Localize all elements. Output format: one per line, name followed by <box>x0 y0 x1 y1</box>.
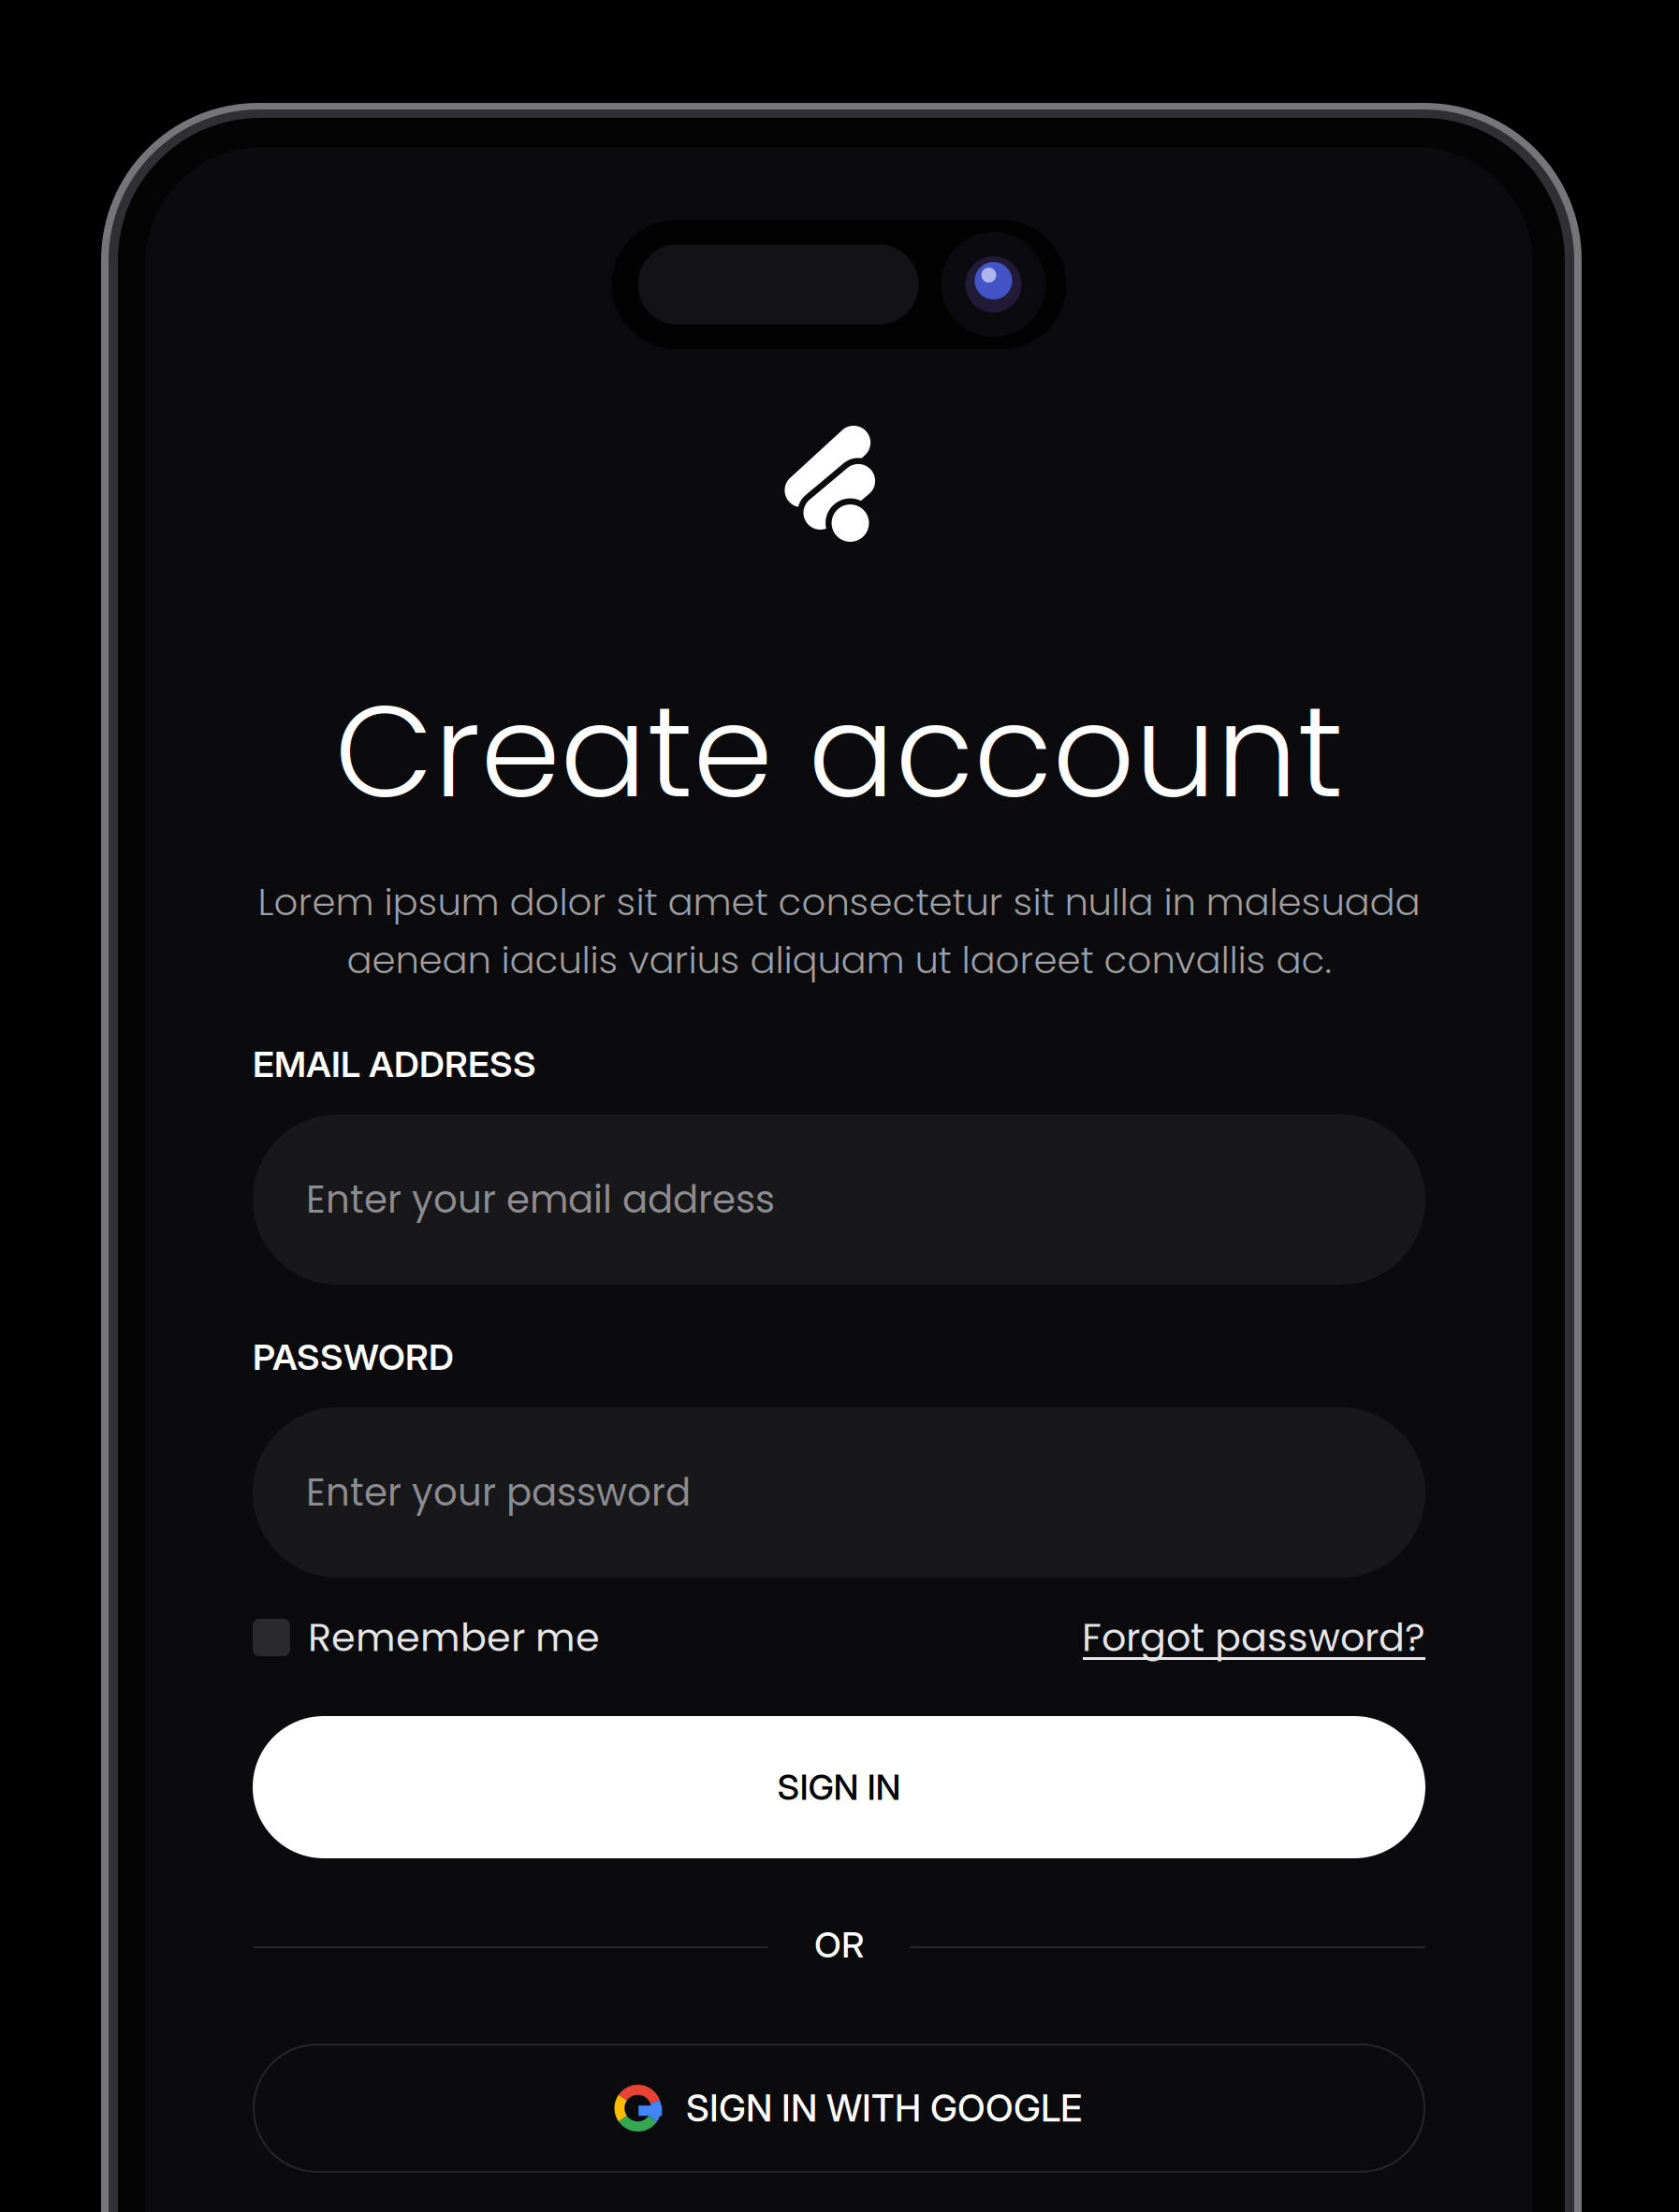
button[interactable]: SIGN IN <box>0 0 1679 2212</box>
staticText: SIGN IN WITH GOOGLE <box>686 2086 1082 2130</box>
staticText: EMAIL ADDRESS <box>253 1042 536 1086</box>
staticText: SIGN IN <box>777 1766 901 1808</box>
staticText: OR <box>814 1923 864 1966</box>
button[interactable]: SIGN IN WITH GOOGLE <box>0 0 1679 2212</box>
staticText: Lorem ipsum dolor sit amet consectetur s… <box>258 876 1420 928</box>
staticText: aenean iaculis varius aliquam ut laoreet… <box>347 934 1331 986</box>
button[interactable]: Remember me <box>0 0 1679 2212</box>
staticText: Enter your password <box>306 1466 691 1519</box>
staticText: Enter your email address <box>306 1173 775 1226</box>
button[interactable]: Forgot password? <box>0 0 1679 2212</box>
staticText: Remember me <box>308 1610 600 1665</box>
staticText: PASSWORD <box>253 1335 454 1378</box>
staticText: Forgot password? <box>1082 1610 1425 1665</box>
staticText: Create account <box>335 662 1343 841</box>
